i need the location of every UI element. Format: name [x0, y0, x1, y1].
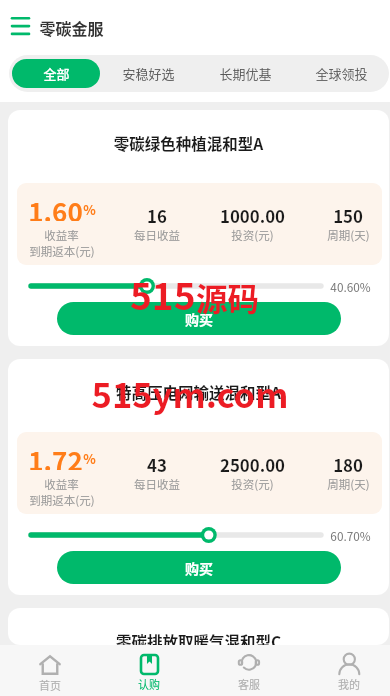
button[interactable]: 我的: [299, 645, 390, 692]
staticText: 全部: [43, 64, 70, 83]
staticText: 零碳排放取暖气混和型C: [8, 630, 389, 645]
staticText: 投资(元): [231, 227, 274, 244]
staticText: 长期优基: [219, 64, 272, 83]
staticText: 特高压电网输送混和型A: [8, 381, 389, 403]
button[interactable]: 客服: [199, 645, 299, 692]
staticText: 零碳金服: [39, 16, 104, 39]
staticText: 每日收益: [134, 227, 180, 244]
staticText: 首页: [39, 677, 61, 693]
staticText: 收益率: [44, 227, 79, 244]
staticText: 客服: [238, 676, 260, 692]
staticText: 认购: [138, 676, 160, 692]
button[interactable]: 全部: [12, 59, 100, 88]
staticText: %: [83, 449, 96, 468]
staticText: 515: [130, 267, 196, 321]
staticText: 1000.00: [220, 204, 285, 228]
staticText: 40.60%: [329, 278, 372, 294]
staticText: 150: [333, 204, 363, 228]
staticText: 2500.00: [220, 453, 285, 477]
staticText: 60.70%: [329, 527, 372, 543]
button[interactable]: 购买: [57, 302, 341, 335]
button[interactable]: 购买: [57, 551, 341, 584]
staticText: 我的: [338, 676, 360, 692]
button[interactable]: 长期优基: [197, 55, 293, 92]
staticText: 源码: [196, 274, 260, 320]
staticText: 收益率: [44, 476, 79, 493]
staticText: 全球领投: [315, 64, 368, 83]
staticText: 每日收益: [134, 476, 180, 493]
staticText: 1.60: [28, 192, 83, 221]
button[interactable]: 零碳排放取暖气混和型C: [8, 608, 389, 645]
staticText: 515ym.com: [0, 368, 385, 418]
staticText: 180: [333, 453, 363, 477]
staticText: 1.72: [28, 441, 83, 470]
button[interactable]: 安稳好选: [100, 55, 197, 92]
staticText: 周期(天): [327, 476, 370, 493]
staticText: %: [83, 200, 96, 219]
staticText: 购买: [185, 558, 213, 578]
staticText: 16: [147, 204, 167, 228]
button[interactable]: 首页: [0, 645, 99, 693]
button[interactable]: 特高压电网输送混和型A: [8, 359, 389, 595]
button[interactable]: 零碳绿色种植混和型A: [8, 110, 389, 346]
staticText: 到期返本(元): [29, 492, 95, 509]
staticText: 零碳绿色种植混和型A: [8, 132, 379, 154]
staticText: 43: [147, 453, 167, 477]
button[interactable]: Menu: [11, 18, 30, 38]
staticText: 购买: [185, 309, 213, 329]
staticText: 周期(天): [327, 227, 370, 244]
staticText: 安稳好选: [122, 64, 175, 83]
button[interactable]: 认购: [99, 645, 199, 692]
button[interactable]: 全球领投: [293, 55, 389, 92]
staticText: 投资(元): [231, 476, 274, 493]
staticText: 到期返本(元): [29, 243, 95, 260]
